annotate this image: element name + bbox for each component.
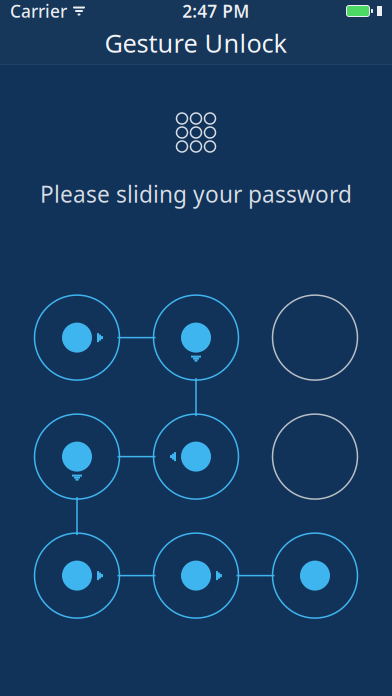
button[interactable]: Gesture Unlock [0,22,392,64]
button[interactable]: Gesture node [272,533,357,618]
staticText: 2:47 PM [182,0,249,22]
button[interactable]: Gesture node [272,414,357,499]
staticText: Gesture Unlock [104,26,287,60]
button[interactable]: Gesture node [153,414,238,499]
button[interactable]: Gesture node [34,414,119,499]
staticText: Please sliding your password [40,179,352,209]
button[interactable]: Gesture node [272,295,357,380]
staticText: Carrier [10,0,67,22]
button[interactable]: Gesture node [34,295,119,380]
button[interactable]: Gesture node [153,295,238,380]
button[interactable]: Gesture node [153,533,238,618]
button[interactable]: Gesture node [34,533,119,618]
